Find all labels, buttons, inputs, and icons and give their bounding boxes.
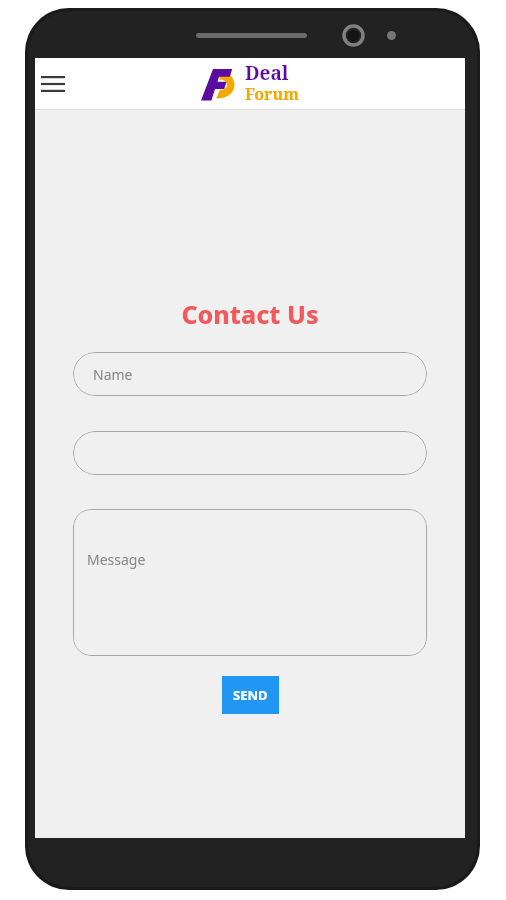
staticText: Forum bbox=[245, 83, 299, 105]
button[interactable]: Name bbox=[73, 352, 427, 396]
staticText: Name bbox=[93, 365, 133, 384]
staticText: SEND bbox=[233, 686, 268, 704]
button[interactable]: Message bbox=[73, 509, 427, 656]
button[interactable] bbox=[73, 431, 427, 475]
staticText: Deal bbox=[245, 60, 289, 86]
button[interactable]: SEND bbox=[222, 676, 279, 714]
staticText: Message bbox=[87, 550, 146, 569]
staticText: Contact Us bbox=[181, 297, 319, 331]
button[interactable]: Open navigation menu bbox=[36, 64, 70, 104]
